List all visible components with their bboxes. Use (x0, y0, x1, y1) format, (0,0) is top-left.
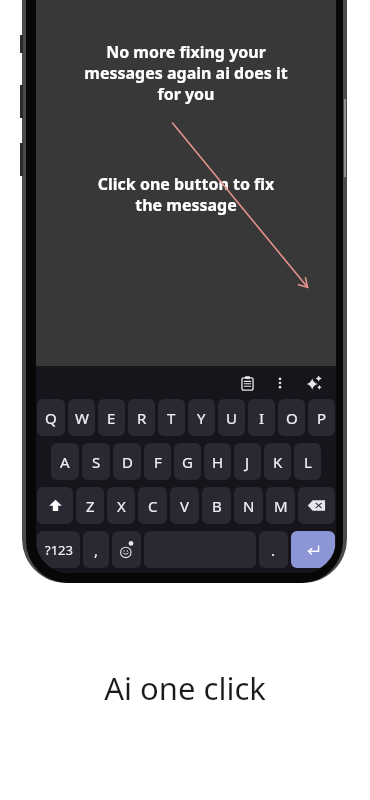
staticText: T (167, 408, 176, 428)
button[interactable]: N (234, 487, 263, 524)
button[interactable]: Clipboard (232, 368, 262, 398)
staticText: R (137, 408, 147, 428)
button[interactable]: T (158, 399, 185, 436)
staticText: I (259, 408, 265, 428)
staticText: L (304, 452, 312, 472)
staticText: N (243, 496, 255, 516)
button[interactable]: Z (76, 487, 104, 524)
staticText: M (274, 496, 288, 516)
button[interactable]: P (308, 399, 335, 436)
staticText: . (271, 540, 276, 560)
staticText: Z (86, 496, 95, 516)
button[interactable]: V (170, 487, 199, 524)
staticText: , (94, 540, 99, 560)
button[interactable]: Emoji (112, 531, 141, 568)
staticText: W (75, 408, 89, 428)
staticText: Y (197, 408, 206, 428)
button[interactable]: Enter (291, 531, 335, 568)
staticText: U (226, 408, 237, 428)
button[interactable]: A (51, 443, 79, 480)
button[interactable]: AI fix message (298, 367, 330, 399)
button[interactable]: R (128, 399, 155, 436)
staticText: Click one button to fix the message (42, 173, 330, 216)
staticText: B (212, 496, 222, 516)
button[interactable]: L (294, 443, 321, 480)
staticText: S (92, 452, 101, 472)
button[interactable]: H (204, 443, 231, 480)
button[interactable]: M (266, 487, 295, 524)
staticText: No more fixing your messages again ai do… (42, 41, 330, 105)
button[interactable]: U (218, 399, 245, 436)
staticText: A (60, 452, 70, 472)
button[interactable]: X (107, 487, 135, 524)
button[interactable]: More options (268, 371, 292, 395)
staticText: P (317, 408, 327, 428)
button[interactable]: Q (37, 399, 65, 436)
staticText: C (148, 496, 158, 516)
button[interactable]: ?123 (37, 531, 80, 568)
staticText: O (286, 408, 298, 428)
staticText: D (122, 452, 133, 472)
staticText: X (117, 496, 126, 516)
button[interactable]: Shift (37, 487, 73, 524)
staticText: H (212, 452, 224, 472)
button[interactable]: . (259, 531, 288, 568)
button[interactable]: S (82, 443, 110, 480)
button[interactable]: D (113, 443, 141, 480)
staticText: Q (45, 408, 57, 428)
button[interactable]: K (264, 443, 291, 480)
staticText: E (107, 408, 116, 428)
button[interactable]: F (144, 443, 171, 480)
button[interactable]: , (83, 531, 109, 568)
staticText: J (245, 452, 250, 472)
button[interactable]: C (138, 487, 167, 524)
staticText: F (154, 452, 162, 472)
staticText: K (273, 452, 283, 472)
button[interactable]: I (248, 399, 275, 436)
button[interactable]: B (202, 487, 231, 524)
staticText: ?123 (45, 541, 73, 559)
button[interactable]: Y (188, 399, 215, 436)
button[interactable]: Backspace (298, 487, 335, 524)
button[interactable]: G (174, 443, 201, 480)
button[interactable]: W (68, 399, 95, 436)
staticText: G (182, 452, 193, 472)
button[interactable]: O (278, 399, 305, 436)
staticText: Ai one click (104, 667, 266, 709)
button[interactable]: E (98, 399, 125, 436)
staticText: V (180, 496, 190, 516)
button[interactable]: J (234, 443, 261, 480)
